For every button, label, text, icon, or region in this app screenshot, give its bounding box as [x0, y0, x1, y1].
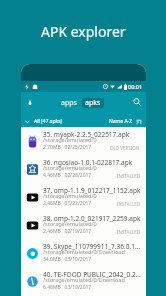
staticText: All (47 apks)	[34, 118, 63, 125]
button[interactable]: Name A-Z	[109, 118, 142, 125]
staticText: /storage/emulated/0/Download	[43, 248, 125, 255]
staticText: OLD VERSION	[110, 145, 140, 151]
staticText: INSTALLED	[117, 229, 140, 235]
staticText: APK explorer	[41, 22, 126, 41]
button[interactable]: apks	[82, 98, 104, 108]
staticText: 40. TE-FOOD PUBLIC_2042_0.2.4...	[43, 270, 142, 279]
staticText: /storage/emulated/0	[43, 164, 97, 171]
button[interactable]: 35. myapk-2.2.5_022517.apk	[21, 127, 146, 155]
staticText: apps	[61, 98, 77, 108]
staticText: 34.0MB 03/10/2017	[43, 256, 92, 263]
staticText: 00:01	[128, 83, 143, 90]
staticText: 2.70MB 02/25/2017	[43, 144, 92, 151]
staticText: Name A-Z	[109, 118, 133, 125]
staticText: 4.46MB 02/28/2017	[43, 172, 92, 179]
staticText: 2.46MB 01/22/2017	[43, 200, 92, 207]
staticText: 36. ngosiao-1.0.1-022817.apk	[43, 158, 133, 167]
staticText: /storage/emulated/0/Download	[43, 276, 125, 283]
button[interactable]: 39. Skype_110799911_7.36.0.103...	[21, 239, 146, 267]
button[interactable]: Search	[131, 96, 143, 108]
button[interactable]: apps	[60, 96, 78, 110]
staticText: 6.48MB 03/10/2017	[43, 284, 92, 291]
staticText: 2.46MB 02/19/2017	[43, 228, 92, 235]
button[interactable]: 37. omp-1.1.9_012217_1152.apk	[21, 183, 146, 211]
button[interactable]: App logo	[25, 97, 35, 107]
staticText: 35. myapk-2.2.5_022517.apk	[43, 130, 130, 139]
staticText: 38. omp-1.2.0_021917_2259.apk	[43, 214, 141, 223]
button[interactable]: 40. TE-FOOD PUBLIC_2042_0.2.4...	[21, 267, 146, 295]
staticText: 37. omp-1.1.9_012217_1152.apk	[43, 186, 141, 195]
button[interactable]: 36. ngosiao-1.0.1-022817.apk	[21, 155, 146, 183]
staticText: /storage/emulated/0	[43, 136, 97, 143]
staticText: apks	[85, 98, 101, 108]
staticText: /storage/emulated/0	[43, 220, 97, 227]
staticText: 39. Skype_110799911_7.36.0.103...	[43, 242, 142, 251]
staticText: /storage/emulated/0	[43, 192, 97, 199]
staticText: INSTALLED	[117, 173, 140, 179]
button[interactable]: 38. omp-1.2.0_021917_2259.apk	[21, 211, 146, 239]
button[interactable]: All (47 apks)	[25, 118, 63, 125]
staticText: INSTALLED	[117, 201, 140, 207]
